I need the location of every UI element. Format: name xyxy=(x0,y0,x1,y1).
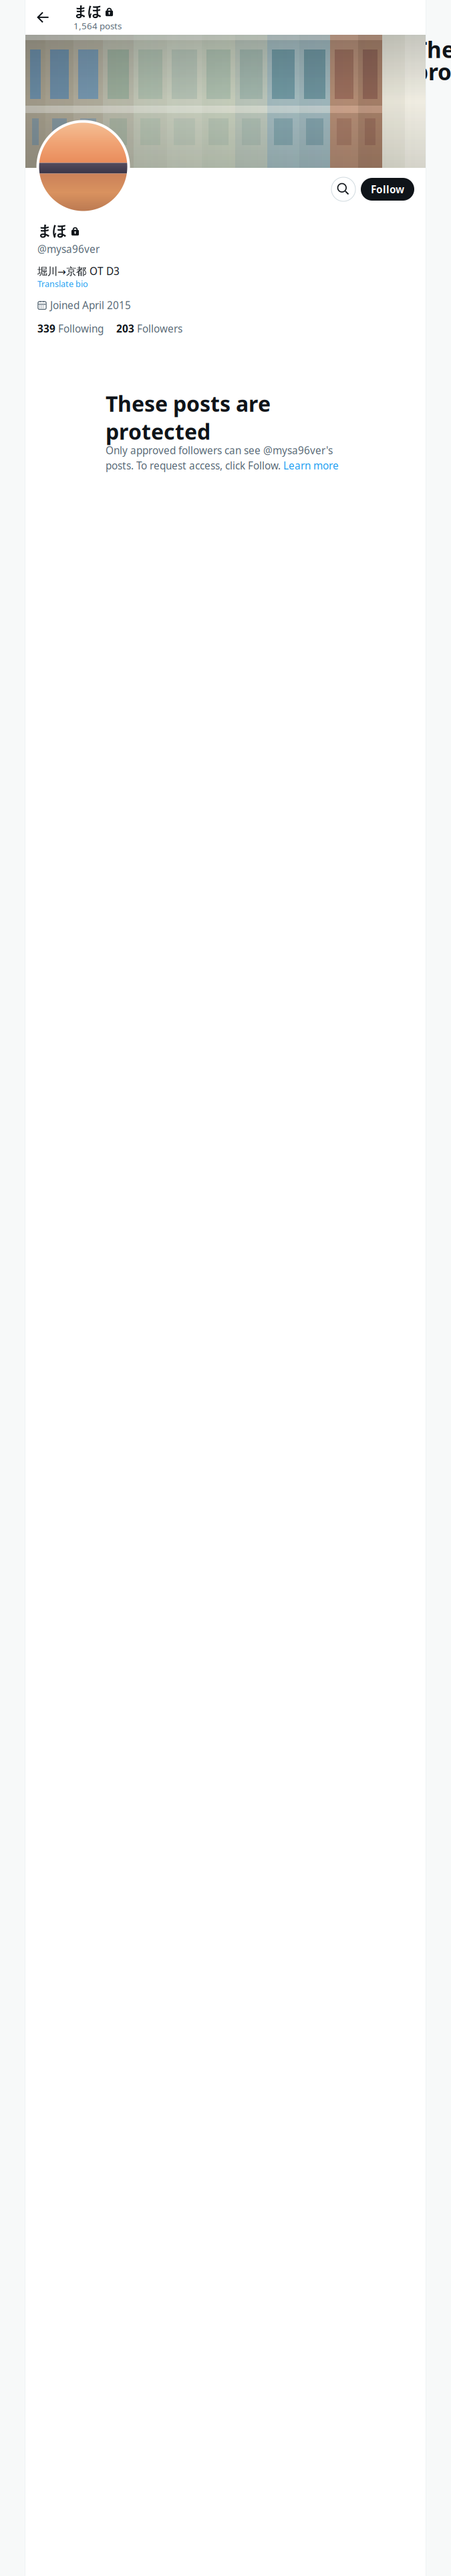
staticText: Only approved followers can see @mysa96v… xyxy=(106,443,333,457)
staticText: These posts are xyxy=(106,389,271,418)
button[interactable]: Follow xyxy=(361,178,414,201)
staticText: 203 xyxy=(116,322,134,336)
staticText: protected xyxy=(106,417,210,446)
button[interactable]: Profile photo xyxy=(36,120,130,214)
staticText: まほ xyxy=(37,222,67,240)
staticText: Following xyxy=(58,322,104,336)
staticText: 堀川→京都 OT D3 xyxy=(37,264,120,278)
staticText: Follow xyxy=(371,182,404,196)
button[interactable]: Translate bio xyxy=(37,278,88,289)
staticText: Joined April 2015 xyxy=(50,298,131,312)
button[interactable]: Learn more xyxy=(283,459,339,473)
staticText: 1,564 posts xyxy=(73,20,122,32)
staticText: posts. To request access, click Follow. xyxy=(106,459,283,473)
button[interactable]: 339 xyxy=(37,322,104,336)
button[interactable]: Search profile xyxy=(331,177,355,201)
button[interactable]: Back xyxy=(31,6,54,29)
staticText: Learn more xyxy=(283,459,339,473)
staticText: まほ xyxy=(73,3,102,20)
staticText: Translate bio xyxy=(37,278,88,289)
staticText: Followers xyxy=(137,322,182,336)
staticText: protected xyxy=(414,56,451,87)
button[interactable]: 203 xyxy=(116,322,182,336)
staticText: These posts are xyxy=(414,34,451,64)
staticText: @mysa96ver xyxy=(37,242,100,256)
staticText: 339 xyxy=(37,322,55,336)
